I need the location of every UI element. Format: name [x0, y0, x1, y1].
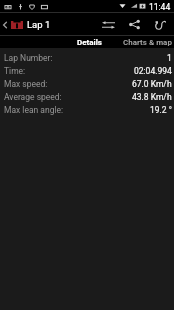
- button[interactable]: Max lean angle:: [0, 103, 174, 116]
- button[interactable]: Navigate up: [0, 13, 51, 36]
- staticText: Average speed:: [4, 92, 62, 102]
- staticText: Time:: [4, 66, 26, 76]
- staticText: 11:44: [149, 2, 171, 12]
- staticText: 1: [167, 53, 172, 63]
- staticText: Lap 1: [27, 19, 51, 30]
- staticText: Max speed:: [4, 79, 48, 89]
- staticText: Charts & map: [123, 38, 172, 47]
- staticText: 67.0 Km/h: [132, 79, 172, 89]
- button[interactable]: Track: [147, 13, 173, 36]
- staticText: 19.2 °: [150, 105, 172, 115]
- button[interactable]: Average speed:: [0, 90, 174, 103]
- button[interactable]: Details: [5, 36, 174, 48]
- staticText: Lap Number:: [4, 53, 53, 63]
- button[interactable]: Share: [121, 13, 147, 36]
- staticText: Max lean angle:: [4, 105, 64, 115]
- staticText: Details: [77, 38, 102, 47]
- button[interactable]: Time:: [0, 64, 174, 77]
- staticText: 43.8 Km/h: [132, 92, 172, 102]
- button[interactable]: Charts & map: [119, 36, 174, 48]
- button[interactable]: Lap Number:: [0, 51, 174, 64]
- button[interactable]: Compare: [95, 13, 121, 36]
- other: Navigate up: [1, 20, 9, 30]
- button[interactable]: Max speed:: [0, 77, 174, 90]
- staticText: 02:04.994: [134, 66, 172, 76]
